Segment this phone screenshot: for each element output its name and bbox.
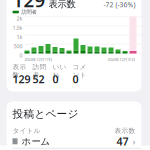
staticText: 2024年12月17日: [24, 57, 52, 62]
staticText: 1k: [16, 33, 22, 41]
staticText: 129: [12, 0, 45, 12]
staticText: 0: [19, 52, 22, 59]
staticText: 500: [13, 43, 22, 50]
staticText: 52: [32, 72, 44, 86]
button[interactable]: ホーム: [6, 135, 141, 148]
staticText: 0: [72, 72, 78, 86]
staticText: 47: [116, 134, 128, 148]
staticText: いいね: [52, 63, 66, 79]
staticText: コメント: [72, 63, 86, 79]
staticText: 表示数: [48, 0, 75, 10]
staticText: 2k: [16, 15, 22, 22]
staticText: 投稿とページ: [12, 107, 78, 121]
staticText: -72 (-36%): [103, 0, 135, 9]
staticText: タイトル: [12, 127, 40, 135]
staticText: 129: [12, 72, 30, 86]
staticText: ›: [132, 135, 135, 147]
staticText: ホーム: [21, 136, 50, 147]
staticText: 表示数: [114, 127, 135, 135]
staticText: 訪問者: [21, 9, 36, 15]
staticText: 0: [52, 72, 58, 86]
staticText: 表示数: [12, 63, 26, 79]
staticText: 訪問者: [32, 63, 46, 79]
staticText: 2024年12月31日: [107, 57, 135, 62]
staticText: 1.5k: [12, 24, 22, 31]
